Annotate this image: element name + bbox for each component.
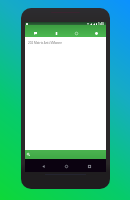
button[interactable]: Back [37,159,49,172]
staticText: 202 Matrix Anti-VMware [28,41,62,45]
button[interactable]: Recent apps [83,159,95,172]
staticText: 1:45 [98,22,105,25]
button[interactable]: Home [60,159,72,172]
button[interactable]: Settings [86,25,106,37]
button[interactable]: Chats [25,25,46,37]
button[interactable]: Search [25,150,106,159]
button[interactable]: Calls [46,25,66,37]
button[interactable]: Status [66,25,86,37]
